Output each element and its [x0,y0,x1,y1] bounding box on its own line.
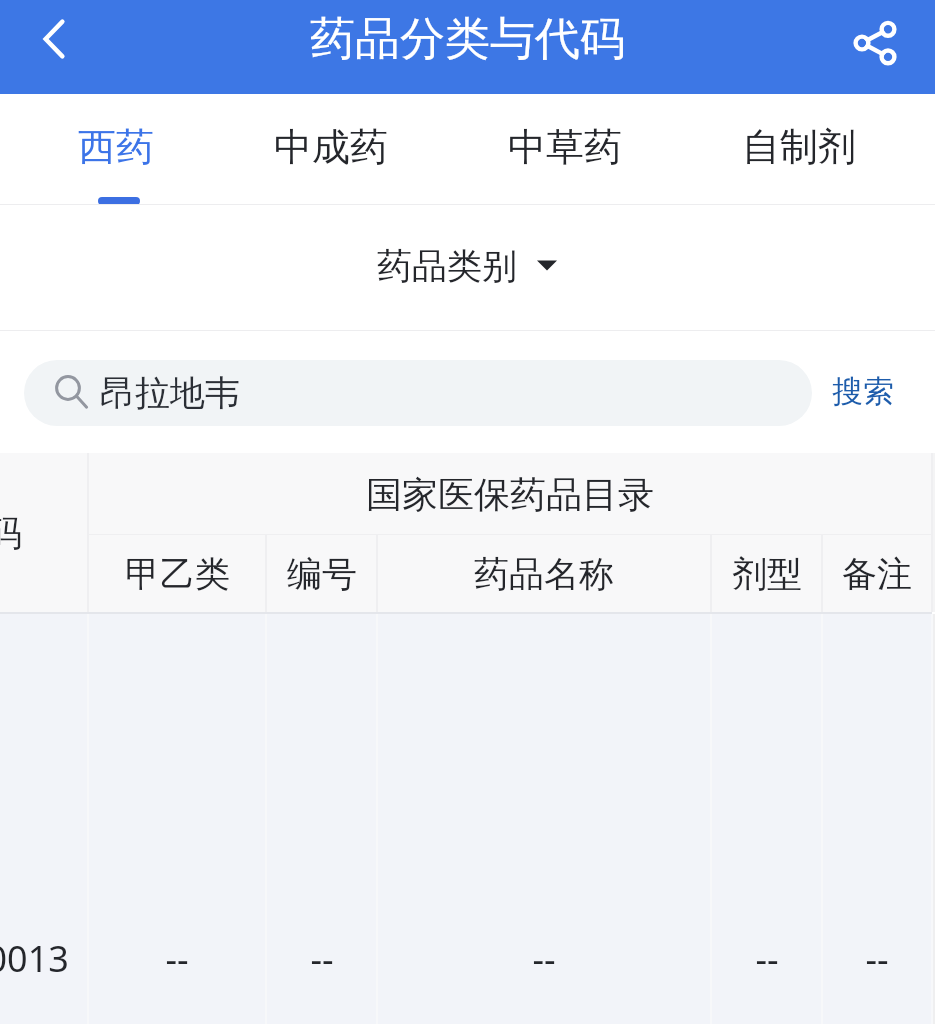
staticText: 药品编码 [0,511,22,555]
button[interactable]: 自制剂 [679,94,919,205]
staticText: 剂型 [732,552,802,596]
staticText: -- [865,934,889,974]
button[interactable]: 70010013 [0,614,935,1024]
staticText: 昂拉地韦 [100,371,240,415]
staticText: -- [310,934,334,974]
button[interactable]: 昂拉地韦 [24,360,812,426]
staticText: -- [532,934,556,974]
staticText: 药品分类与代码 [310,11,625,68]
staticText: 编号 [287,552,357,596]
button[interactable]: 中成药 [218,94,444,205]
staticText: 中草药 [508,123,622,171]
button[interactable]: 搜索 [832,372,894,411]
staticText: 70010013 [0,934,69,974]
staticText: -- [755,934,779,974]
staticText: 国家医保药品目录 [366,472,654,517]
staticText: 药品类别 [377,244,517,288]
staticText: 备注 [842,552,912,596]
staticText: 中成药 [274,123,388,171]
staticText: 西药 [78,123,154,171]
button[interactable]: Back [0,0,110,94]
button[interactable]: 中草药 [448,94,681,205]
staticText: 甲乙类 [125,552,230,596]
button[interactable]: Share [839,0,935,94]
staticText: -- [165,934,189,974]
staticText: 药品名称 [474,552,614,596]
button[interactable]: 西药 [7,94,225,205]
button[interactable]: 药品类别 [377,244,559,288]
staticText: 搜索 [832,372,894,411]
staticText: 自制剂 [742,123,856,171]
